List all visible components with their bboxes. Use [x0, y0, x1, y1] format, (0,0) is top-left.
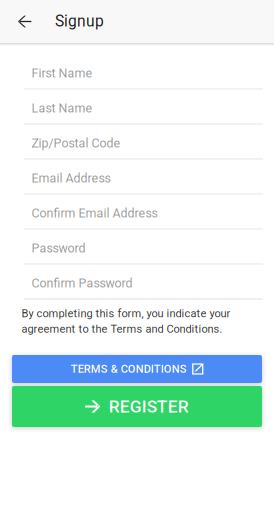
staticText: Password [31, 241, 85, 256]
staticText: Signup [55, 12, 104, 30]
staticText: TERMS & CONDITIONS [71, 362, 187, 375]
button[interactable]: TERMS & CONDITIONS [12, 355, 262, 383]
button[interactable]: REGISTER [12, 386, 262, 427]
staticText: First Name [31, 66, 92, 81]
staticText: Confirm Email Address [31, 206, 157, 221]
staticText: Email Address [31, 171, 110, 186]
staticText: Zip/Postal Code [31, 136, 120, 151]
staticText: By completing this form, you indicate yo… [21, 307, 230, 335]
button[interactable]: Back [6, 0, 44, 43]
staticText: Last Name [31, 101, 92, 116]
staticText: Confirm Password [31, 276, 132, 291]
staticText: REGISTER [109, 396, 189, 417]
